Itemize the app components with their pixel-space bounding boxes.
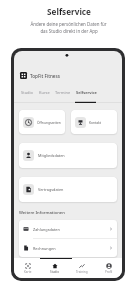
staticText: Weitere Informationen bbox=[19, 210, 65, 216]
button[interactable]: Vertragsdaten bbox=[19, 177, 117, 202]
button[interactable]: Studio bbox=[21, 90, 34, 95]
button[interactable]: Öffnungszeiten bbox=[19, 110, 65, 134]
button[interactable]: Selfservice bbox=[76, 90, 97, 95]
staticText: Kontakt bbox=[89, 120, 102, 124]
button[interactable]: Studio bbox=[41, 258, 68, 278]
button[interactable]: Kontakt bbox=[71, 110, 117, 134]
staticText: Studio bbox=[50, 270, 60, 274]
staticText: Zahlungsdaten bbox=[33, 227, 109, 232]
staticText: Training bbox=[76, 270, 88, 274]
staticText: TopFit Fitness bbox=[30, 73, 60, 79]
staticText: Rechnungen bbox=[33, 246, 109, 251]
button[interactable]: Rechnungen bbox=[19, 239, 117, 257]
button[interactable]: Termine bbox=[55, 90, 71, 95]
staticText: Profil bbox=[105, 270, 113, 274]
button[interactable]: Zahlungsdaten bbox=[19, 220, 117, 238]
staticText: Öffnungszeiten bbox=[37, 120, 61, 124]
staticText: Selfservice bbox=[47, 6, 91, 17]
button[interactable]: Kurse bbox=[39, 90, 50, 95]
staticText: Karte bbox=[24, 270, 32, 274]
staticText: Ändere deine persönlichen Daten für bbox=[30, 21, 107, 27]
button[interactable]: Training bbox=[68, 258, 95, 278]
staticText: das Studio direkt in der App bbox=[40, 28, 98, 34]
button[interactable]: Mitgliedsdaten bbox=[19, 143, 117, 168]
button[interactable]: Karte bbox=[14, 258, 41, 278]
staticText: Studio bbox=[21, 90, 34, 95]
staticText: Vertragsdaten bbox=[38, 187, 64, 192]
button[interactable]: Profil bbox=[95, 258, 122, 278]
staticText: Mitgliedsdaten bbox=[38, 153, 65, 158]
staticText: Selfservice bbox=[76, 90, 97, 95]
staticText: Termine bbox=[55, 90, 71, 95]
staticText: Kurse bbox=[39, 90, 50, 95]
